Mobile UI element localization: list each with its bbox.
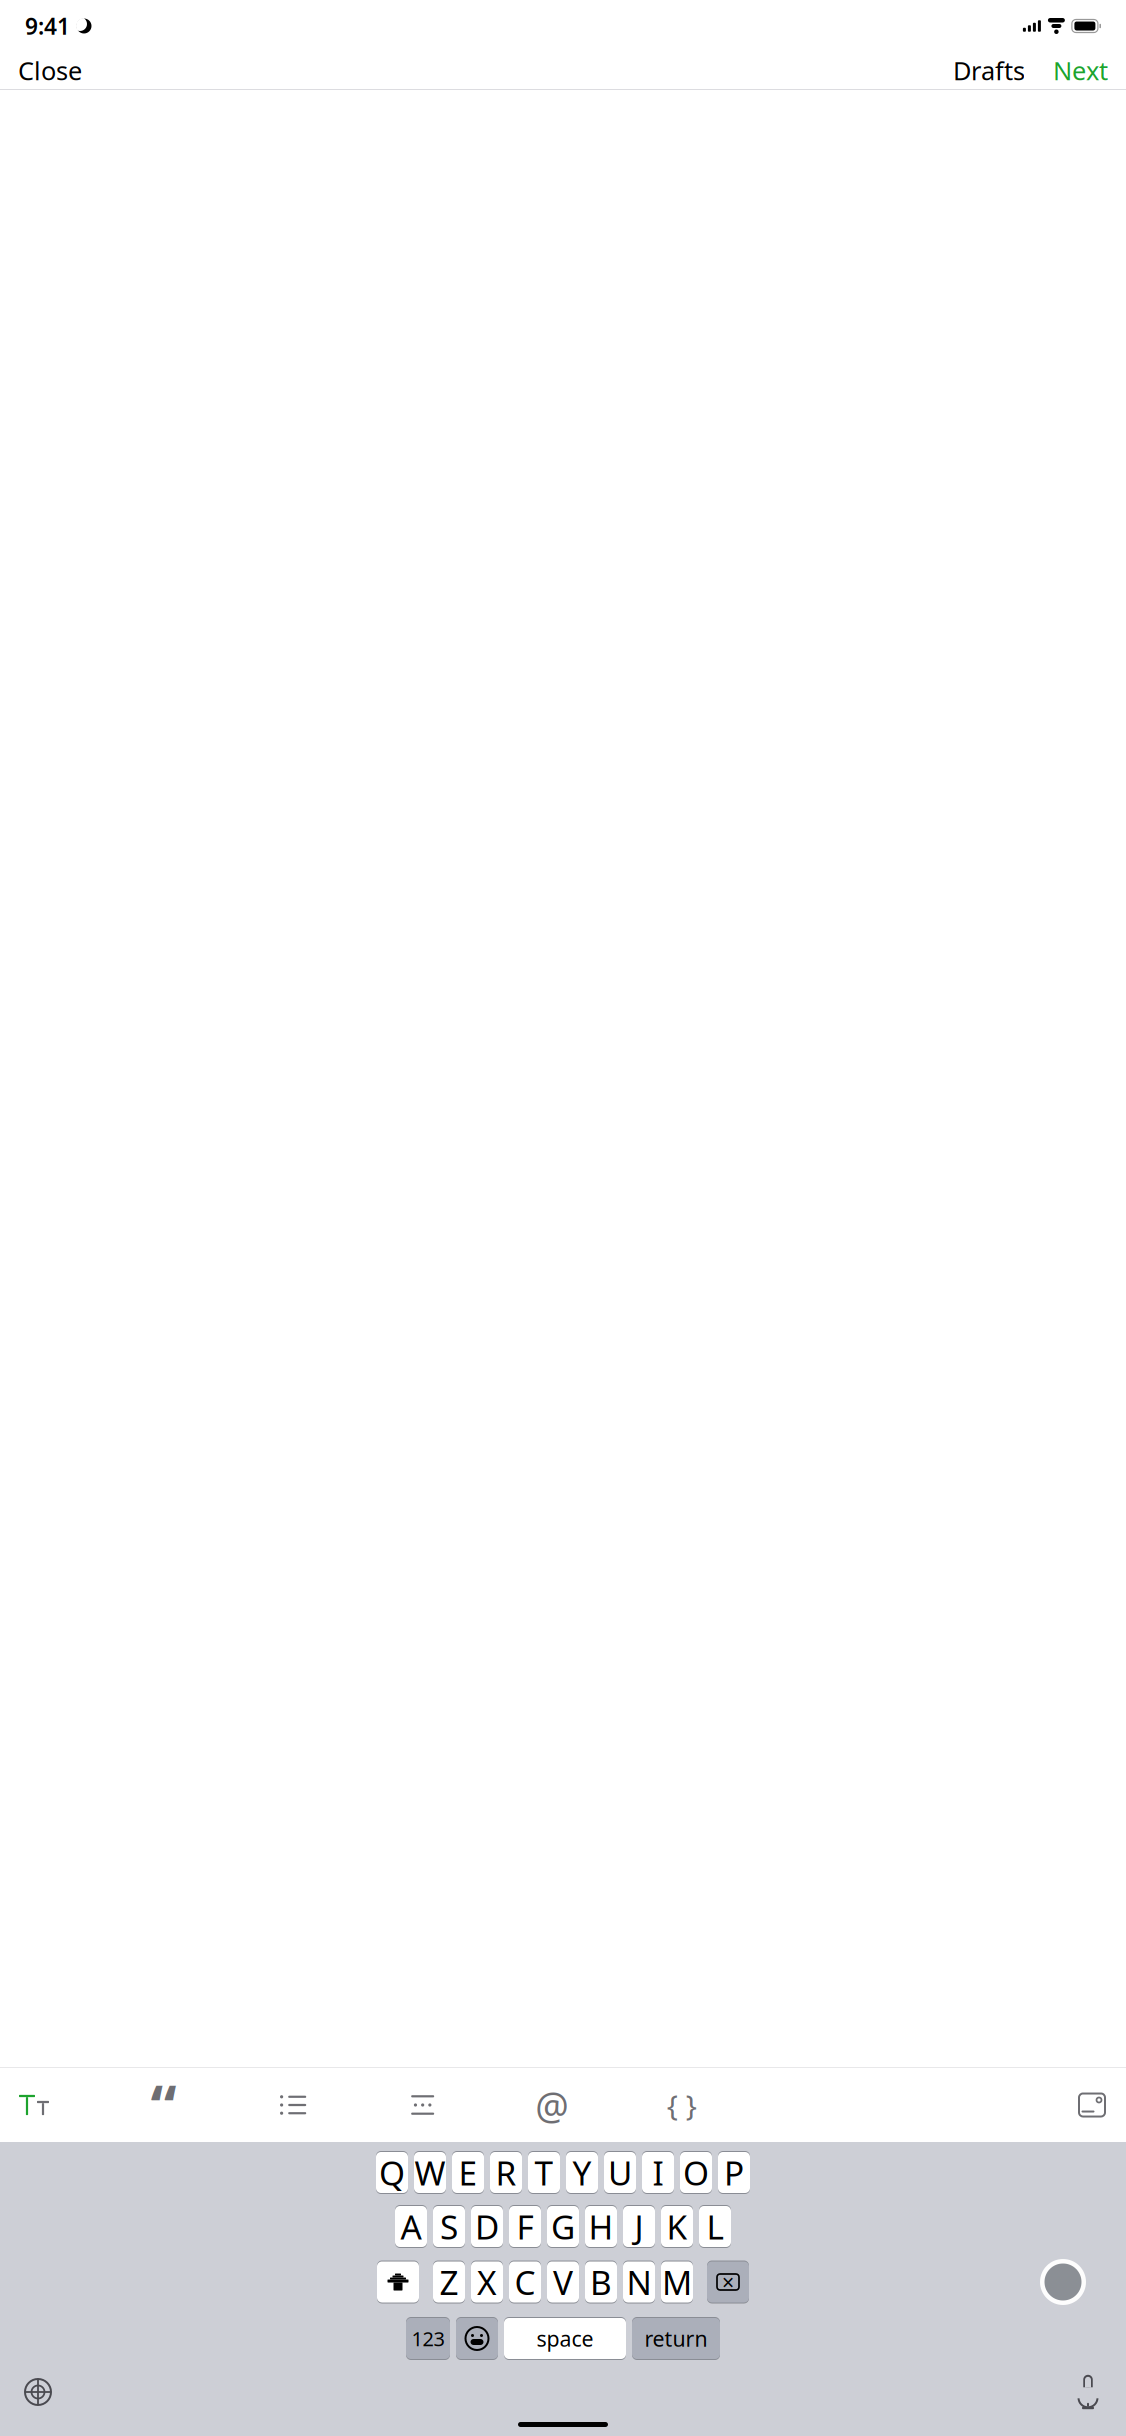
staticText: V	[553, 2260, 573, 2304]
button[interactable]: M	[661, 2260, 693, 2303]
staticText: S	[440, 2204, 458, 2249]
button[interactable]: N	[623, 2260, 655, 2303]
staticText: Close	[18, 54, 82, 87]
staticText: A	[400, 2204, 421, 2249]
staticText: Drafts	[953, 54, 1025, 87]
button[interactable]: Insert image	[1074, 2090, 1110, 2120]
button[interactable]: A	[395, 2205, 427, 2248]
button[interactable]: Separator	[405, 2090, 441, 2120]
button[interactable]: Emoji	[456, 2317, 498, 2360]
staticText: @	[535, 2080, 569, 2130]
button[interactable]: L	[699, 2205, 731, 2248]
button[interactable]: H	[585, 2205, 617, 2248]
staticText: I	[652, 2150, 663, 2195]
staticText: N	[626, 2260, 651, 2304]
button[interactable]: I	[642, 2151, 674, 2194]
button[interactable]: Next	[1047, 44, 1114, 97]
staticText: E	[458, 2150, 477, 2195]
staticText: U	[608, 2150, 632, 2195]
button[interactable]: E	[452, 2151, 484, 2194]
staticText: T	[534, 2150, 553, 2195]
staticText: G	[551, 2204, 575, 2249]
staticText: D	[475, 2204, 499, 2249]
staticText: M	[662, 2260, 692, 2304]
staticText: ×	[722, 2268, 734, 2296]
staticText: “	[151, 2066, 177, 2144]
button[interactable]: B	[585, 2260, 617, 2303]
staticText: 123	[411, 2325, 444, 2352]
staticText: return	[644, 2324, 707, 2353]
button[interactable]: Delete	[707, 2260, 749, 2303]
staticText: 9:41	[25, 11, 70, 41]
staticText: B	[590, 2260, 612, 2304]
button[interactable]: Close	[12, 44, 88, 97]
staticText: K	[666, 2204, 687, 2249]
button[interactable]: Dictate	[1069, 2372, 1107, 2412]
button[interactable]: Code block	[664, 2090, 700, 2120]
staticText: Z	[439, 2260, 458, 2304]
button[interactable]: U	[604, 2151, 636, 2194]
staticText: O	[683, 2150, 709, 2195]
button[interactable]: S	[433, 2205, 465, 2248]
button[interactable]: F	[509, 2205, 541, 2248]
staticText: Next	[1053, 54, 1108, 87]
button[interactable]: W	[414, 2151, 446, 2194]
button[interactable]: Next keyboard	[19, 2373, 57, 2411]
staticText: F	[516, 2204, 533, 2249]
button[interactable]: Q	[376, 2151, 408, 2194]
button[interactable]: Shift	[377, 2260, 419, 2303]
button[interactable]: Bulleted list	[275, 2090, 311, 2120]
staticText: { }	[667, 2085, 697, 2124]
button[interactable]: P	[718, 2151, 750, 2194]
staticText: L	[706, 2204, 723, 2249]
button[interactable]: C	[509, 2260, 541, 2303]
button[interactable]: Drafts	[947, 44, 1031, 97]
button[interactable]: Mention	[534, 2090, 570, 2120]
button[interactable]: V	[547, 2260, 579, 2303]
button[interactable]: D	[471, 2205, 503, 2248]
button[interactable]: space	[504, 2317, 626, 2360]
staticText: Q	[379, 2150, 405, 2195]
staticText: Y	[572, 2150, 591, 2195]
staticText: C	[514, 2260, 535, 2304]
button[interactable]: O	[680, 2151, 712, 2194]
staticText: space	[536, 2324, 593, 2353]
button[interactable]: X	[471, 2260, 503, 2303]
button[interactable]: R	[490, 2151, 522, 2194]
button[interactable]: Y	[566, 2151, 598, 2194]
button[interactable]: 123	[406, 2317, 450, 2360]
staticText: X	[477, 2260, 497, 2304]
button[interactable]: Z	[433, 2260, 465, 2303]
button[interactable]: return	[632, 2317, 720, 2360]
button[interactable]: K	[661, 2205, 693, 2248]
staticText: P	[724, 2150, 744, 2195]
staticText: R	[495, 2150, 516, 2195]
button[interactable]: T	[528, 2151, 560, 2194]
button[interactable]: Text style	[16, 2090, 52, 2120]
staticText: H	[588, 2204, 613, 2249]
staticText: J	[634, 2204, 643, 2249]
button[interactable]: J	[623, 2205, 655, 2248]
button[interactable]: Quote	[146, 2090, 182, 2120]
button[interactable]: G	[547, 2205, 579, 2248]
staticText: W	[414, 2150, 445, 2195]
